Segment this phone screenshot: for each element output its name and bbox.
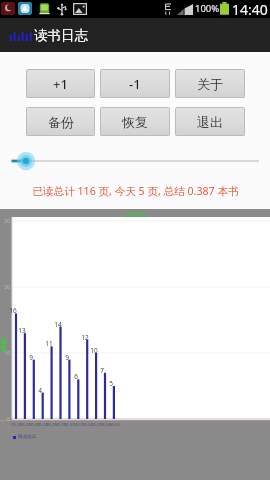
staticText: 06.05	[109, 422, 120, 428]
staticText: 20	[4, 284, 10, 291]
staticText: 5	[109, 379, 113, 388]
staticText: 06.03	[91, 422, 102, 428]
button[interactable]: +1	[26, 69, 95, 98]
staticText: 0	[7, 416, 10, 423]
staticText: 已读总计 116 页, 今天 5 页, 总结 0.387 本书	[32, 184, 239, 198]
staticText: 05.28	[37, 422, 48, 428]
button[interactable]: 备份	[26, 107, 95, 136]
staticText: 05.30	[55, 422, 66, 428]
button[interactable]: -1	[100, 69, 170, 98]
staticText: 10	[90, 346, 98, 355]
staticText: 05.26	[20, 422, 31, 428]
staticText: 7	[100, 366, 104, 375]
staticText: 读书日志	[34, 27, 88, 44]
staticText: 6	[74, 372, 78, 381]
staticText: 05.31	[64, 422, 75, 428]
button[interactable]: 关于	[175, 69, 245, 98]
staticText: 05.27	[29, 422, 40, 428]
staticText: 13	[18, 326, 26, 335]
staticText: 16	[9, 306, 17, 315]
button[interactable]: 恢复	[100, 107, 170, 136]
staticText: 05.25	[11, 422, 22, 428]
staticText: 30	[4, 218, 10, 225]
staticText: 05.29	[46, 422, 57, 428]
staticText: 读书情况	[125, 211, 146, 218]
staticText: -1	[129, 75, 141, 93]
staticText: 退出	[197, 114, 223, 130]
staticText: 06.04	[100, 422, 111, 428]
staticText: 11	[45, 339, 53, 348]
staticText: 06.01	[73, 422, 84, 428]
staticText: 关于	[197, 76, 223, 92]
button[interactable]: Pages slider	[0, 150, 270, 172]
staticText: 9	[29, 353, 33, 362]
staticText: 14	[54, 320, 62, 329]
staticText: 阅读情况	[18, 434, 36, 440]
button[interactable]: 退出	[175, 107, 245, 136]
staticText: 10	[4, 350, 10, 357]
staticText: 备份	[48, 114, 74, 130]
staticText: 4	[38, 386, 42, 395]
staticText: 9	[65, 353, 69, 362]
staticText: 14:40	[232, 0, 268, 18]
staticText: +1	[53, 75, 68, 93]
staticText: 100%	[195, 2, 220, 15]
staticText: 恢复	[122, 114, 148, 130]
staticText: 06.02	[82, 422, 93, 428]
staticText: 12	[81, 333, 89, 342]
